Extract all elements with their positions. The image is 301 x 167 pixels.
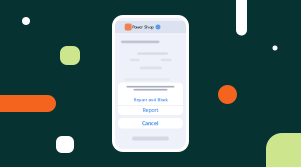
staticText: Cancel: [142, 120, 159, 127]
button[interactable]: Report and Block: [118, 94, 183, 106]
staticText: Report: [142, 106, 158, 114]
staticText: Power Shop: [132, 24, 154, 30]
staticText: Report and Block: [133, 97, 167, 102]
button[interactable]: Report: [118, 105, 183, 114]
button[interactable]: Cancel: [118, 118, 183, 128]
